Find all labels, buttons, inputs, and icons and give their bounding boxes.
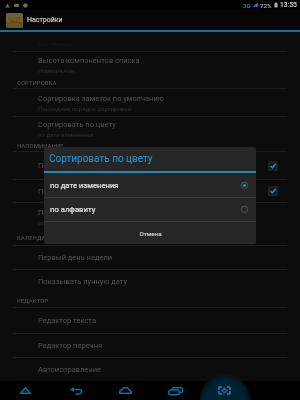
staticText: Нормальная (38, 67, 75, 74)
button[interactable]: Показывать лунную дату (0, 270, 300, 293)
staticText: КАЛЕНДАРЬ (17, 234, 54, 241)
button[interactable]: Редактор перечня (0, 334, 300, 357)
button[interactable]: Автоисправление (0, 358, 300, 381)
button[interactable]: Свернуть клавиатуру (10, 381, 41, 400)
staticText: 3G (243, 2, 251, 9)
button[interactable]: Высота компонентов списка (0, 52, 300, 77)
button[interactable]: Сортировать по цвету (0, 117, 300, 140)
staticText: Автоисправление (38, 365, 101, 374)
staticText: по дате изменения (38, 131, 93, 138)
staticText: НАПОМИНАНИЕ (17, 142, 64, 149)
staticText: Последний порядок сортировки (38, 105, 132, 112)
button[interactable]: Приложение (6, 13, 23, 28)
staticText: Показывать лунную дату (38, 277, 128, 286)
button[interactable]: Назад (60, 381, 91, 400)
staticText: Первый день недели (38, 253, 113, 262)
staticText: Редактор текста (38, 316, 96, 325)
button[interactable]: Повтор сигнала (0, 203, 300, 230)
staticText: Постоянное уведомление (38, 187, 130, 196)
staticText: Повтор сигнала (38, 208, 94, 217)
button[interactable]: Снимок экрана (209, 381, 240, 400)
staticText: Редактор перечня (38, 341, 103, 350)
staticText: Сортировать по цвету (49, 153, 153, 165)
staticText: отложить на 10 минут (38, 219, 102, 226)
staticText: по алфавиту (50, 205, 96, 214)
staticText: Показывать напоминания (38, 161, 132, 170)
button[interactable]: по дате изменения (44, 173, 256, 197)
staticText: Отмена (139, 230, 162, 237)
button[interactable]: Показывать напоминания (0, 152, 300, 179)
button[interactable]: Постоянное уведомление (0, 180, 300, 202)
staticText: Сортировать по цвету (38, 120, 116, 129)
button[interactable]: Первый день недели (0, 246, 300, 269)
staticText: Настройки (27, 16, 63, 24)
staticText: Высота компонентов списка (38, 56, 140, 65)
staticText: 13:55 (280, 1, 297, 9)
button[interactable]: Сортировка заметок по умолчанию (0, 89, 300, 116)
staticText: 72% (260, 2, 272, 9)
staticText: СОРТИРОВКА (17, 79, 57, 86)
staticText: NOTE (8, 16, 21, 22)
button[interactable]: по алфавиту (44, 198, 256, 221)
staticText: РЕДАКТОР (17, 297, 49, 304)
button[interactable]: Главный экран (110, 381, 141, 400)
button[interactable]: Редактор текста (0, 308, 300, 333)
button[interactable]: Отмена (44, 222, 256, 244)
button[interactable]: Недавние приложения (160, 381, 191, 400)
staticText: Сортировка заметок по умолчанию (38, 94, 164, 103)
staticText: по дате изменения (50, 181, 119, 190)
